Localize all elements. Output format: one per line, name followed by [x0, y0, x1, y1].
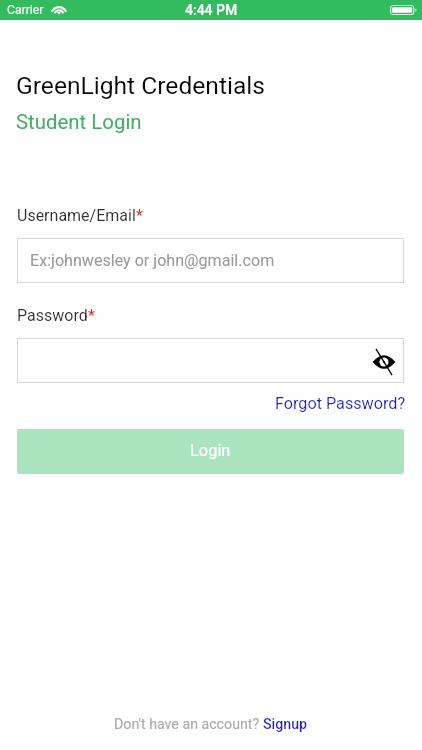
button[interactable]: Login	[17, 429, 404, 474]
staticText: Password	[17, 306, 88, 325]
staticText: *	[136, 206, 143, 225]
button[interactable]: Show password	[370, 348, 398, 376]
staticText: Username/Email	[17, 206, 136, 225]
staticText: Login	[190, 441, 231, 460]
staticText: *	[88, 306, 95, 325]
button[interactable]: Show password	[17, 338, 404, 383]
staticText: Don't have an account?	[114, 716, 263, 733]
staticText: 4:44 PM	[185, 2, 238, 18]
staticText: Carrier	[7, 3, 44, 17]
staticText: Ex:johnwesley or john@gmail.com	[30, 251, 275, 270]
staticText: GreenLight Credentials	[16, 71, 265, 100]
button[interactable]: Forgot Password?	[275, 394, 406, 413]
staticText: Student Login	[16, 110, 142, 134]
button[interactable]: Signup	[263, 716, 308, 733]
button[interactable]: Ex:johnwesley or john@gmail.com	[17, 238, 404, 283]
